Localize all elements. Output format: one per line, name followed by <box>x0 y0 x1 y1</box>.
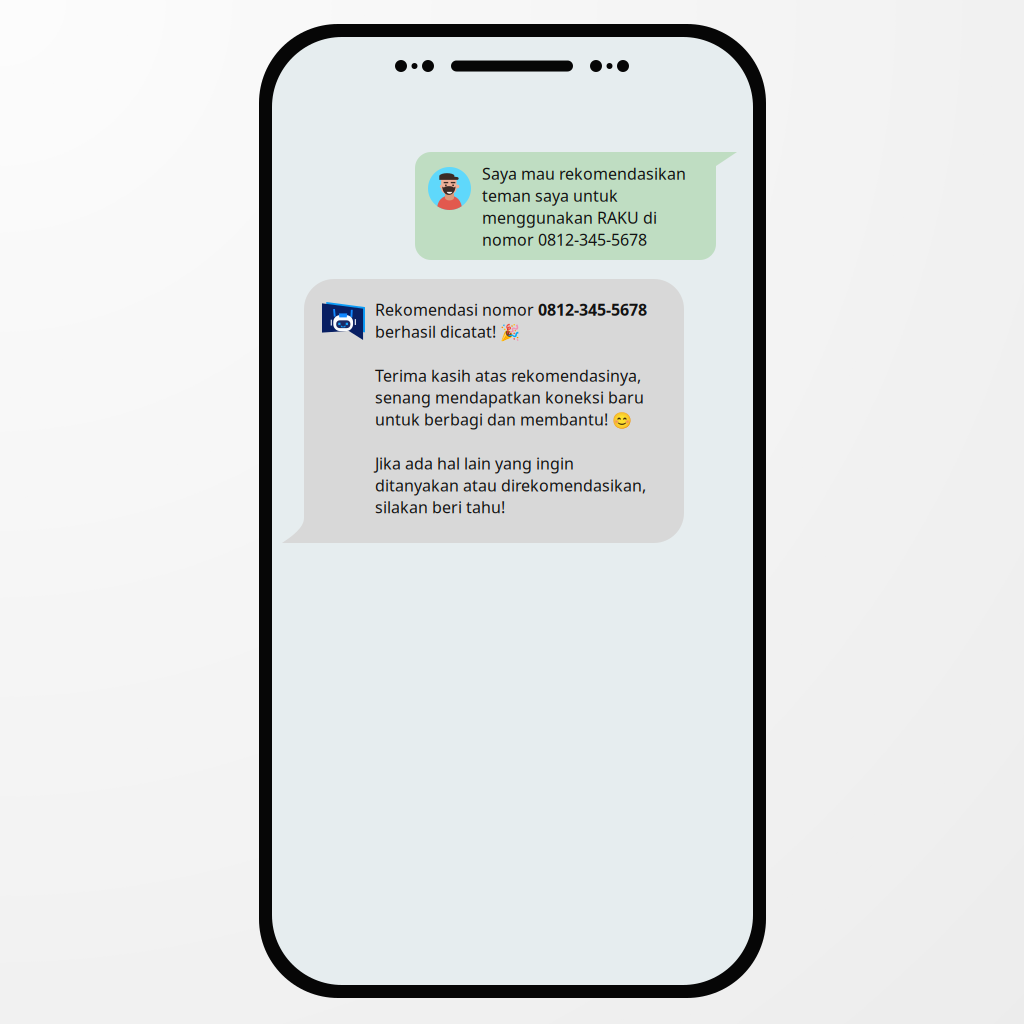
button[interactable]: Rekomendasi nomor 0812-345-5678 berhasil… <box>282 279 684 543</box>
button[interactable]: Saya mau rekomendasikan teman saya untuk… <box>415 152 737 260</box>
staticText: Rekomendasi nomor 0812-345-5678 berhasil… <box>375 299 647 518</box>
staticText: Saya mau rekomendasikan teman saya untuk… <box>482 163 686 250</box>
